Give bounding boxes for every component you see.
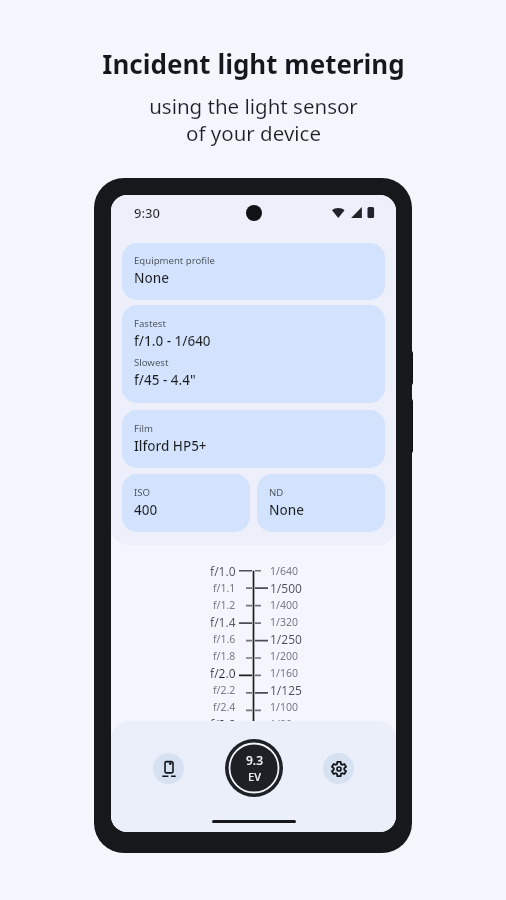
staticText: f/2.4 <box>213 700 236 714</box>
button[interactable]: Settings <box>323 753 354 784</box>
staticText: f/1.4 <box>210 614 236 630</box>
staticText: Film <box>134 422 153 435</box>
staticText: f/1.0 - 1/640 <box>134 332 211 350</box>
staticText: Equipment profile <box>134 254 215 267</box>
staticText: Fastest <box>134 317 166 330</box>
staticText: None <box>134 269 169 287</box>
staticText: f/1.8 <box>213 649 236 663</box>
staticText: 1/500 <box>270 580 302 596</box>
staticText: EV <box>248 769 261 784</box>
button[interactable]: Equipment profile <box>122 243 385 300</box>
staticText: 1/125 <box>270 682 302 698</box>
button[interactable]: Film <box>122 410 385 468</box>
button[interactable]: ISO <box>122 474 250 532</box>
staticText: 1/320 <box>270 615 298 629</box>
staticText: f/2.0 <box>210 665 236 681</box>
button[interactable]: ND <box>257 474 385 532</box>
staticText: 400 <box>134 501 158 519</box>
staticText: f/45 - 4.4" <box>134 371 196 389</box>
staticText: using the light sensor of your device <box>149 92 358 147</box>
staticText: 1/250 <box>270 631 302 647</box>
staticText: f/2.8 <box>210 716 236 732</box>
staticText: 1/640 <box>270 564 298 578</box>
staticText: Incident light metering <box>102 46 405 81</box>
staticText: f/1.2 <box>213 598 236 612</box>
staticText: ISO <box>134 486 151 499</box>
staticText: 1/100 <box>270 700 298 714</box>
staticText: 9.3 <box>246 752 263 768</box>
button[interactable]: 9.3 <box>225 739 283 797</box>
staticText: 1/160 <box>270 666 298 680</box>
staticText: f/1.6 <box>213 632 236 646</box>
button[interactable]: Fastest <box>122 305 385 403</box>
staticText: 9:30 <box>134 204 160 222</box>
staticText: Ilford HP5+ <box>134 437 207 455</box>
staticText: f/1.0 <box>210 563 236 579</box>
staticText: f/1.1 <box>213 581 236 595</box>
button[interactable]: Calibrate device <box>153 753 184 784</box>
staticText: None <box>269 501 304 519</box>
staticText: 1/200 <box>270 649 298 663</box>
staticText: Slowest <box>134 356 169 369</box>
staticText: 1/80 <box>270 717 292 731</box>
staticText: f/2.2 <box>213 683 236 697</box>
staticText: ND <box>269 486 284 499</box>
staticText: 1/400 <box>270 598 298 612</box>
